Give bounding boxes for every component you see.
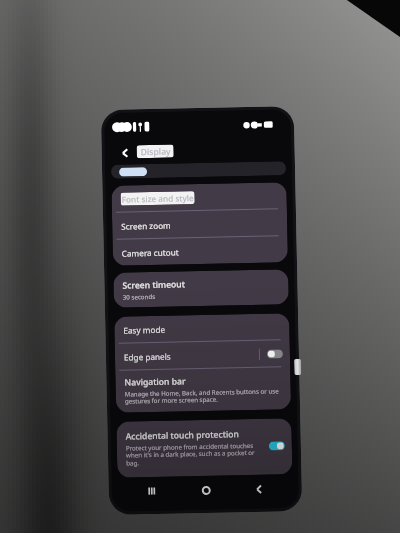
- button[interactable]: Recents: [138, 478, 165, 504]
- button[interactable]: Back: [245, 476, 272, 502]
- button[interactable]: Font size and style: [111, 182, 287, 212]
- button[interactable]: Easy mode: [114, 313, 290, 343]
- button[interactable]: Screen timeout: [113, 269, 289, 308]
- staticText: Camera cutout: [122, 246, 179, 259]
- button[interactable]: Accidental touch protection: [116, 418, 292, 478]
- staticText: Screen timeout: [122, 278, 185, 292]
- staticText: Easy mode: [123, 324, 165, 336]
- staticText: Navigation bar: [124, 375, 187, 389]
- staticText: Manage the Home, Back, and Recents butto…: [125, 386, 282, 406]
- button[interactable]: Camera cutout: [112, 236, 288, 266]
- staticText: Edge panels: [124, 351, 171, 363]
- button[interactable]: Back: [117, 145, 132, 160]
- staticText: Display: [140, 146, 171, 158]
- button[interactable]: Home: [192, 477, 219, 503]
- staticText: Protect your phone from accidental touch…: [126, 441, 264, 468]
- button[interactable]: Screen zoom: [112, 209, 287, 239]
- button[interactable]: Turn on: [267, 349, 283, 359]
- staticText: Font size and style: [121, 192, 195, 205]
- button[interactable]: Navigation bar: [115, 367, 291, 413]
- button[interactable]: [111, 161, 286, 179]
- staticText: 30 seconds: [123, 292, 156, 301]
- staticText: Screen zoom: [121, 220, 171, 232]
- button[interactable]: Edge panels: [115, 340, 290, 370]
- button[interactable]: Turn off: [269, 441, 285, 451]
- staticText: Accidental touch protection: [125, 428, 240, 443]
